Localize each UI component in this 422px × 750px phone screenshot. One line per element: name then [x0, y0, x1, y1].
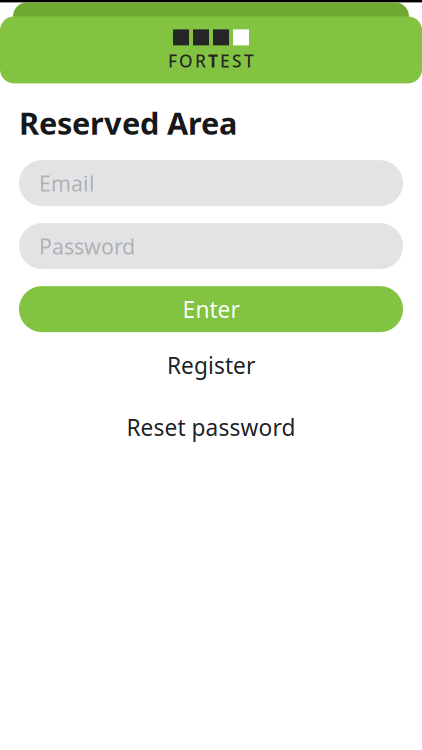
button[interactable]: Enter — [19, 286, 403, 332]
staticText: S — [232, 49, 242, 72]
staticText: Enter — [182, 294, 239, 324]
button[interactable]: Password — [19, 223, 403, 269]
button[interactable]: Reset password — [19, 410, 403, 444]
staticText: Password — [39, 232, 135, 260]
staticText: Reserved Area — [19, 102, 237, 143]
staticText: Nessuna SIM — [14, 0, 136, 3]
staticText: E — [220, 49, 230, 72]
button[interactable]: Register — [19, 348, 403, 382]
staticText: Email — [39, 169, 95, 197]
button[interactable]: Email — [19, 160, 403, 206]
staticText: 9% — [348, 0, 376, 3]
staticText: R — [195, 49, 206, 72]
staticText: Reset password — [126, 412, 295, 442]
staticText: T — [208, 49, 218, 72]
staticText: O — [179, 49, 193, 72]
staticText: F — [168, 49, 177, 72]
staticText: 10:12 — [219, 0, 269, 3]
staticText: T — [244, 49, 254, 72]
staticText: Register — [167, 350, 255, 380]
